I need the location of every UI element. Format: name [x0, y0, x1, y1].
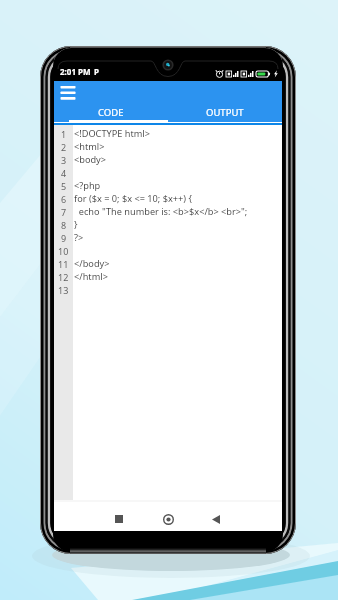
staticText: <html>: [74, 140, 105, 153]
staticText: for ($x = 0; $x <= 10; $x++) {: [74, 192, 192, 205]
staticText: 4: [61, 167, 67, 179]
staticText: </body>: [74, 257, 110, 270]
button[interactable]: Back: [206, 509, 226, 529]
button[interactable]: Home: [158, 509, 178, 529]
staticText: 1: [61, 128, 67, 140]
staticText: P: [94, 66, 99, 77]
staticText: 6: [61, 193, 67, 205]
staticText: }: [74, 218, 78, 231]
staticText: echo "The number is: <b>$x</b> <br>";: [74, 205, 248, 218]
staticText: <!DOCTYPE html>: [74, 127, 150, 140]
staticText: 12: [58, 271, 69, 283]
button[interactable]: OUTPUT: [168, 104, 282, 120]
staticText: 9: [61, 232, 67, 244]
button[interactable]: Menu: [57, 81, 79, 104]
button[interactable]: CODE: [54, 104, 168, 120]
staticText: CODE: [98, 106, 124, 119]
staticText: 7: [61, 206, 67, 218]
staticText: 3: [61, 154, 67, 166]
staticText: ?>: [74, 231, 84, 244]
staticText: 13: [58, 284, 69, 296]
staticText: OUTPUT: [206, 106, 244, 119]
staticText: <?php: [74, 179, 101, 192]
staticText: 2: [61, 141, 67, 153]
staticText: 8: [61, 219, 67, 231]
staticText: 11: [58, 258, 69, 270]
staticText: </html>: [74, 270, 108, 283]
staticText: 5: [61, 180, 67, 192]
button[interactable]: Recents: [109, 509, 129, 529]
staticText: <body>: [74, 153, 107, 166]
staticText: 2:01 PM: [60, 66, 91, 77]
staticText: 10: [58, 245, 69, 257]
